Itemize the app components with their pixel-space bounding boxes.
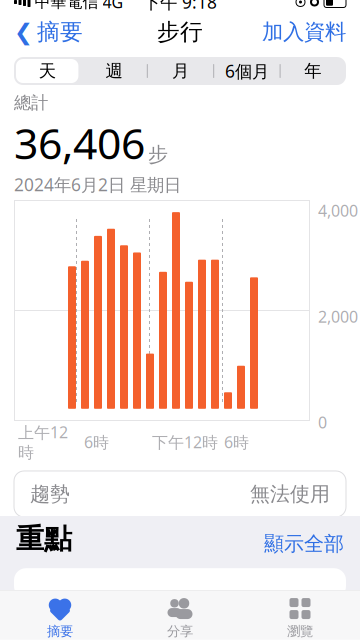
- button[interactable]: 分享: [120, 591, 240, 639]
- staticText: 6個月: [225, 59, 269, 82]
- staticText: 瀏覽: [287, 623, 313, 639]
- staticText: 加入資料: [262, 19, 346, 45]
- button[interactable]: 週: [80, 57, 147, 85]
- staticText: 重點: [16, 522, 72, 556]
- staticText: 顯示全部: [264, 532, 344, 556]
- button[interactable]: 月: [147, 57, 213, 85]
- staticText: 36,406: [14, 114, 145, 171]
- staticText: 摘要: [47, 623, 73, 639]
- staticText: 4G: [102, 0, 123, 13]
- staticText: 週: [106, 60, 123, 82]
- button[interactable]: 年: [280, 57, 346, 85]
- staticText: 6時: [84, 431, 109, 453]
- staticText: 摘要: [37, 18, 83, 46]
- staticText: 年: [304, 60, 321, 82]
- staticText: ❮: [14, 19, 33, 45]
- button[interactable]: 天: [14, 57, 80, 85]
- button[interactable]: 趨勢: [14, 471, 346, 517]
- staticText: 2,000: [318, 306, 358, 327]
- staticText: 趨勢: [30, 482, 70, 506]
- staticText: 步行: [157, 18, 203, 46]
- button[interactable]: 顯示全部: [264, 532, 344, 556]
- staticText: 下午 9:18: [143, 0, 217, 13]
- staticText: 月: [172, 60, 189, 82]
- staticText: 總計: [14, 92, 48, 113]
- staticText: 步: [148, 142, 168, 167]
- button[interactable]: 加入資料: [252, 13, 356, 51]
- staticText: 下午12時: [152, 431, 218, 453]
- staticText: 6時: [224, 431, 249, 453]
- button[interactable]: 6個月: [213, 57, 280, 85]
- staticText: 無法使用: [250, 482, 330, 506]
- staticText: 上午12時: [18, 421, 68, 462]
- button[interactable]: ❮: [4, 12, 93, 52]
- staticText: 2024年6月2日 星期日: [14, 173, 181, 196]
- button[interactable]: 摘要: [0, 591, 120, 639]
- staticText: 分享: [167, 623, 193, 639]
- staticText: 4,000: [318, 200, 358, 221]
- button[interactable]: 瀏覽: [240, 591, 360, 639]
- staticText: 0: [318, 412, 327, 433]
- staticText: 中華電信: [34, 0, 98, 12]
- staticText: 天: [39, 60, 56, 82]
